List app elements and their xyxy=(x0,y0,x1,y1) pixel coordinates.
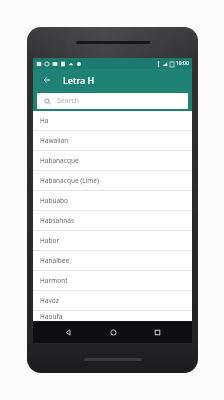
button[interactable]: Harmont xyxy=(33,271,192,290)
button[interactable]: Home xyxy=(104,323,122,341)
button[interactable]: Habor xyxy=(33,231,192,250)
button[interactable]: Search xyxy=(37,93,188,109)
button[interactable]: Hanalbee xyxy=(33,251,192,270)
staticText: Ha xyxy=(40,116,49,125)
button[interactable]: Haoufa xyxy=(33,311,192,321)
staticText: Habanacque (Lime) xyxy=(40,176,99,185)
button[interactable]: Back xyxy=(59,323,77,341)
button[interactable]: Habanacque xyxy=(33,151,192,170)
staticText: Habanacque xyxy=(40,156,79,165)
staticText: Habsahnas xyxy=(40,216,75,225)
button[interactable]: Habsahnas xyxy=(33,211,192,230)
button[interactable]: Hawaiian xyxy=(33,131,192,150)
staticText: 10:00 xyxy=(176,60,189,67)
staticText: Hawaiian xyxy=(40,136,69,145)
staticText: Haoufa xyxy=(40,312,63,321)
staticText: Search xyxy=(57,96,80,106)
button[interactable]: Habuabo xyxy=(33,191,192,210)
staticText: Habuabo xyxy=(40,196,69,205)
staticText: Habor xyxy=(40,236,60,245)
button[interactable]: Habanacque (Lime) xyxy=(33,171,192,190)
button[interactable]: Recent apps xyxy=(148,323,166,341)
staticText: Havoz xyxy=(40,296,59,305)
staticText: Harmont xyxy=(40,276,68,285)
button[interactable]: Ha xyxy=(33,111,192,130)
button[interactable]: Havoz xyxy=(33,291,192,310)
staticText: Hanalbee xyxy=(40,256,70,265)
staticText: Letra H xyxy=(63,74,95,86)
button[interactable]: Back xyxy=(39,72,55,88)
